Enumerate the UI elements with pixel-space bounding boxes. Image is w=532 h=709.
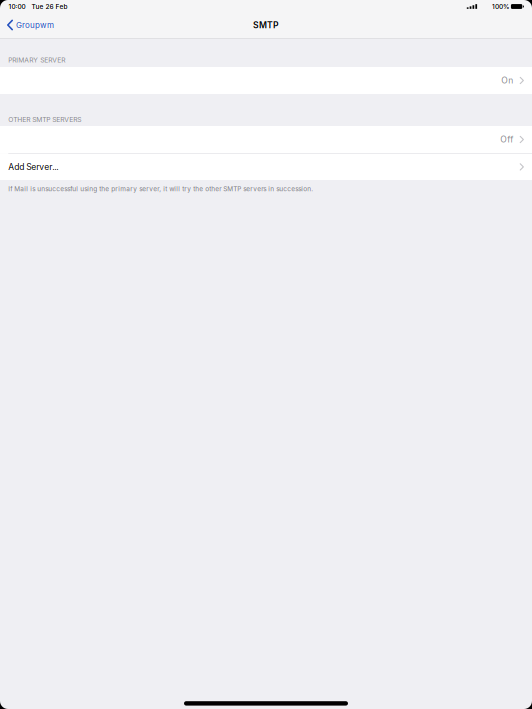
staticText: Off [500,134,513,145]
button[interactable]: Add Server... [0,154,532,180]
staticText: 100% [492,2,509,10]
staticText: PRIMARY SERVER [8,56,65,64]
staticText: If Mail is unsuccessful using the primar… [8,185,313,193]
staticText: SMTP [253,20,279,30]
button[interactable]: Off [0,126,532,153]
staticText: Groupwm [16,20,54,30]
button[interactable]: On [0,67,532,94]
button[interactable]: Groupwm [0,13,62,37]
staticText: Tue 26 Feb [31,2,67,10]
staticText: On [501,75,513,86]
staticText: Add Server... [8,162,58,172]
staticText: OTHER SMTP SERVERS [8,115,81,124]
staticText: 10:00 [8,2,25,10]
